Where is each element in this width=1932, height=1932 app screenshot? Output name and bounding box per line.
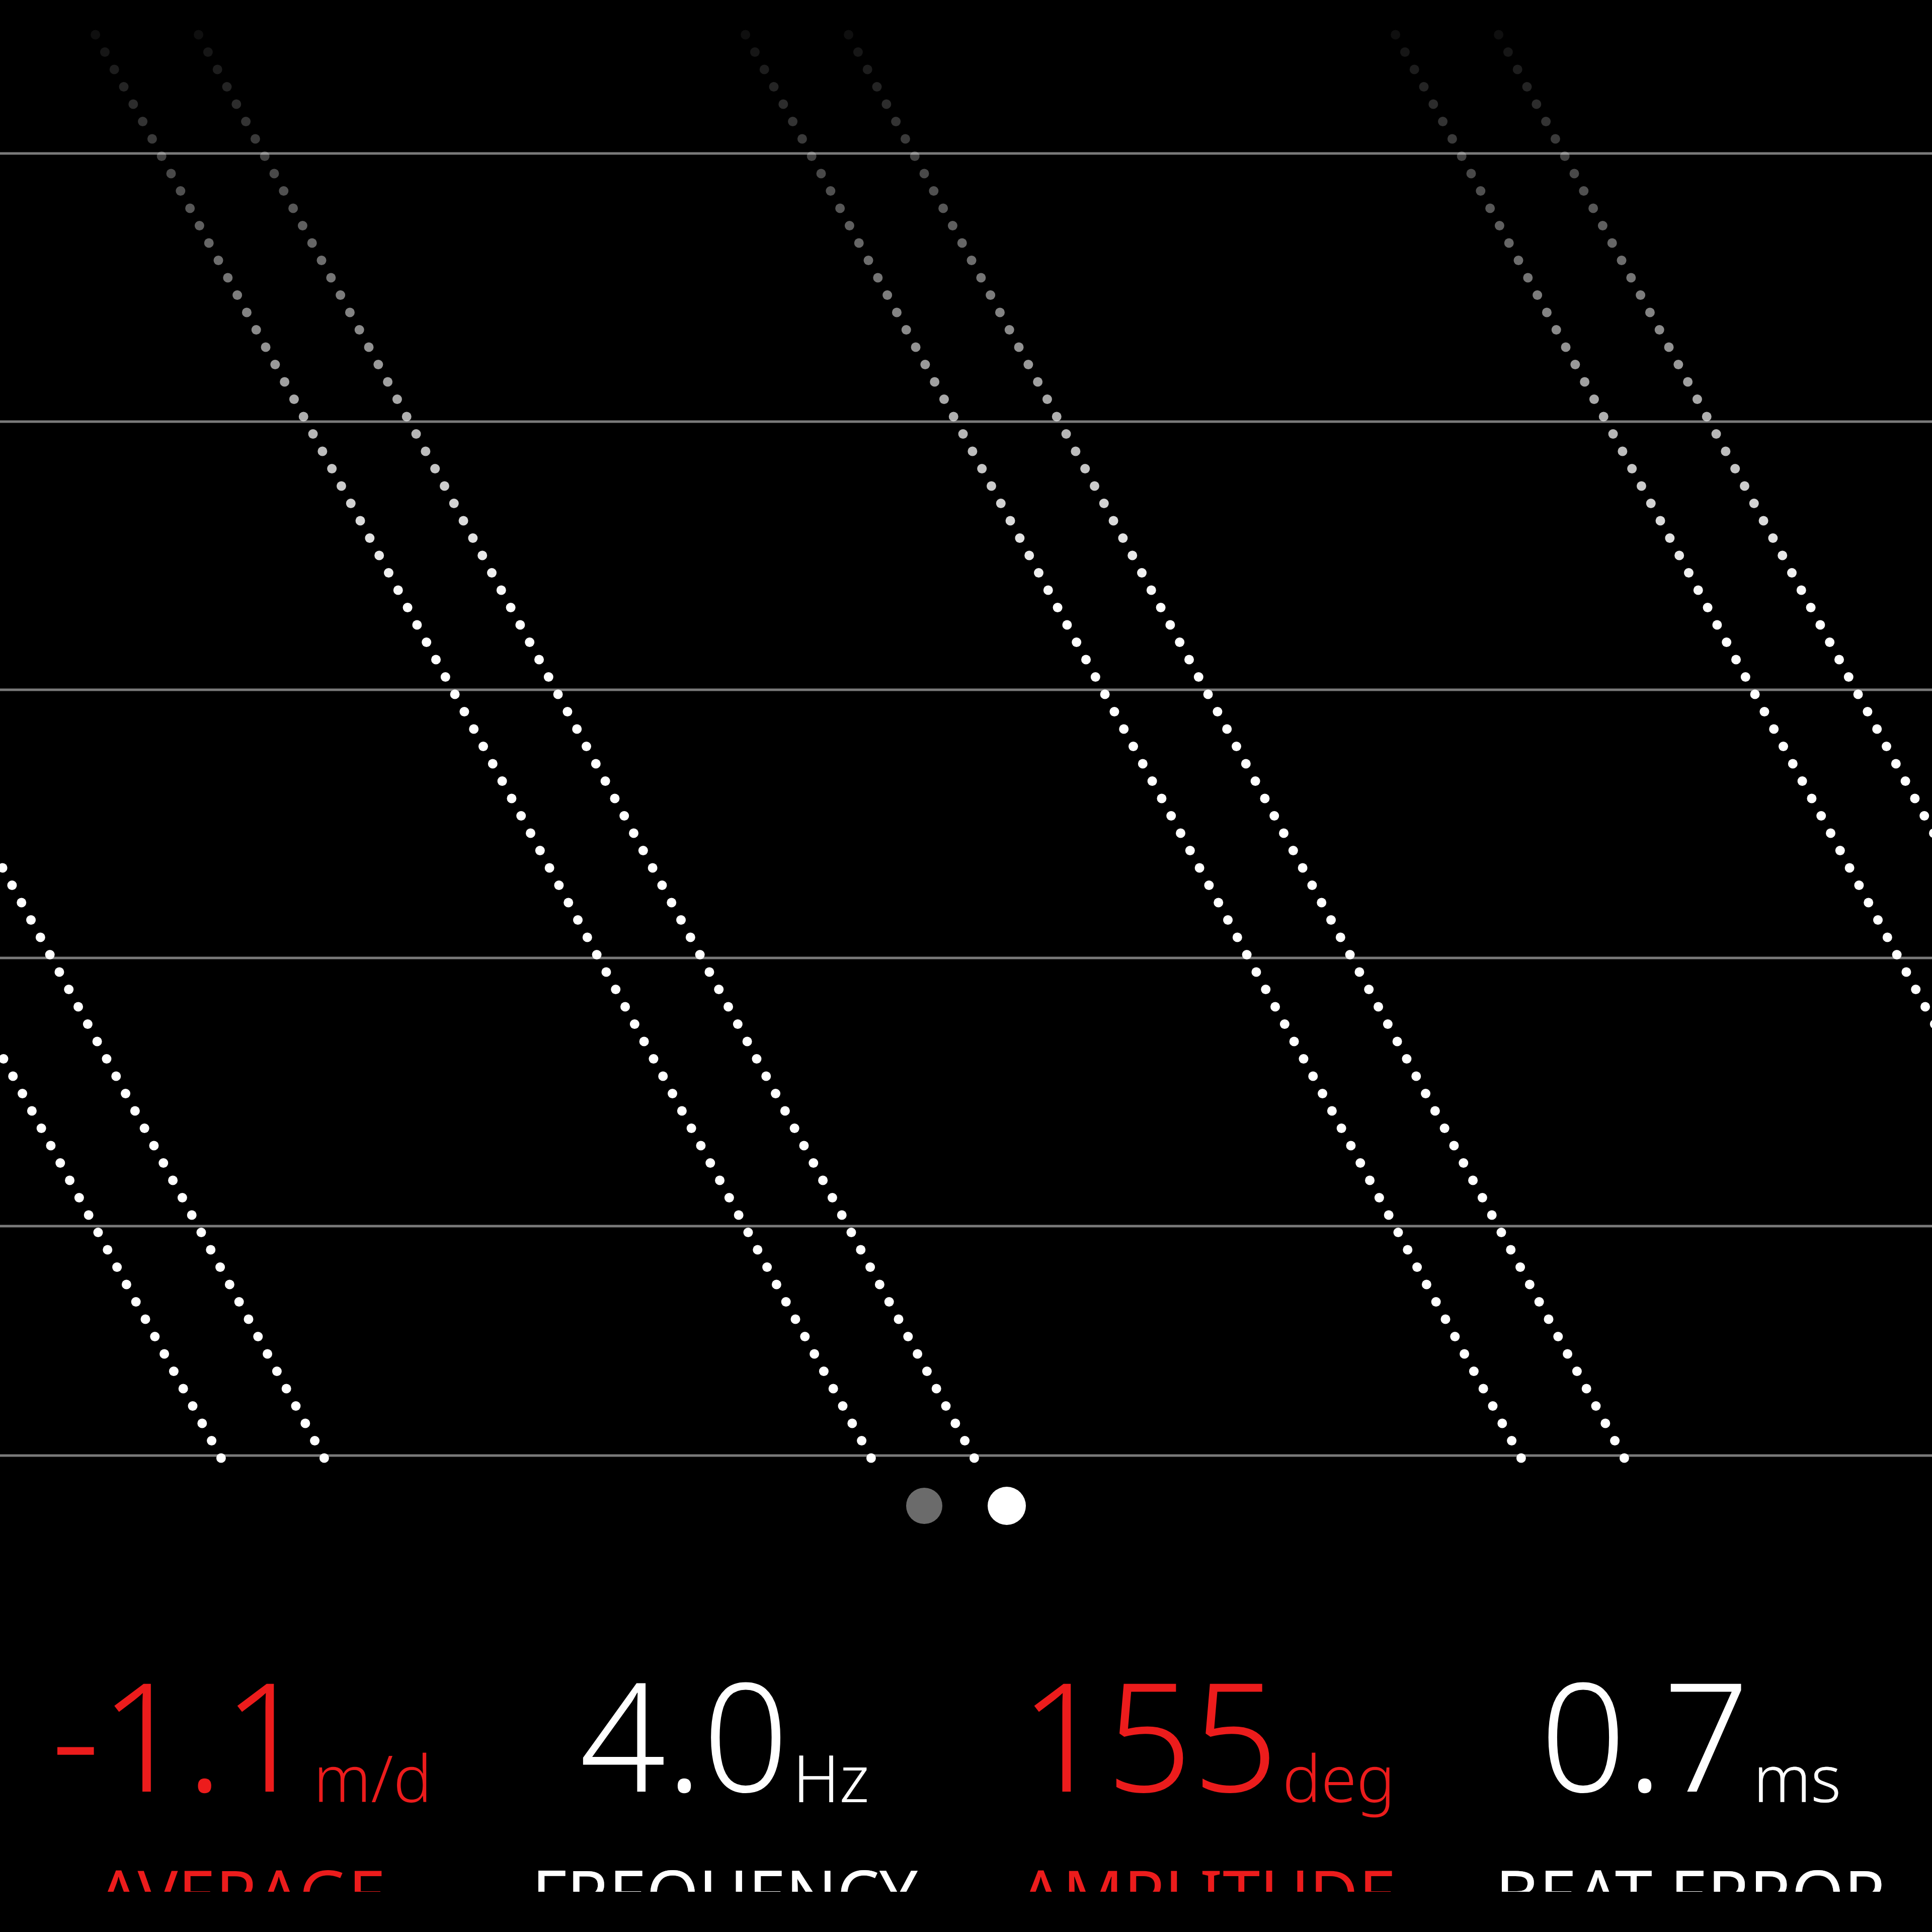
button[interactable]: Page 1 bbox=[906, 1488, 942, 1524]
staticText: deg bbox=[1282, 1733, 1396, 1821]
staticText: ms bbox=[1753, 1733, 1841, 1821]
button[interactable]: Page 2 selected bbox=[988, 1487, 1026, 1525]
staticText: BEAT ERROR bbox=[1495, 1847, 1886, 1892]
button[interactable]: -1.1 bbox=[0, 1630, 483, 1892]
staticText: AMPLITUDE bbox=[1019, 1847, 1396, 1892]
button[interactable]: Timing graph bbox=[0, 0, 1932, 1458]
staticText: AVERAGE bbox=[97, 1847, 386, 1892]
staticText: 155 bbox=[1020, 1630, 1278, 1836]
button[interactable]: 0.7 bbox=[1449, 1630, 1932, 1892]
staticText: 4.0 bbox=[580, 1630, 789, 1836]
staticText: 0.7 bbox=[1540, 1630, 1749, 1836]
staticText: Hz bbox=[793, 1733, 869, 1821]
button[interactable]: 155 bbox=[966, 1630, 1449, 1892]
button[interactable]: 4.0 bbox=[483, 1630, 966, 1892]
staticText: m/d bbox=[313, 1733, 432, 1821]
staticText: -1.1 bbox=[51, 1630, 309, 1836]
staticText: FREQUENCY bbox=[532, 1847, 918, 1892]
